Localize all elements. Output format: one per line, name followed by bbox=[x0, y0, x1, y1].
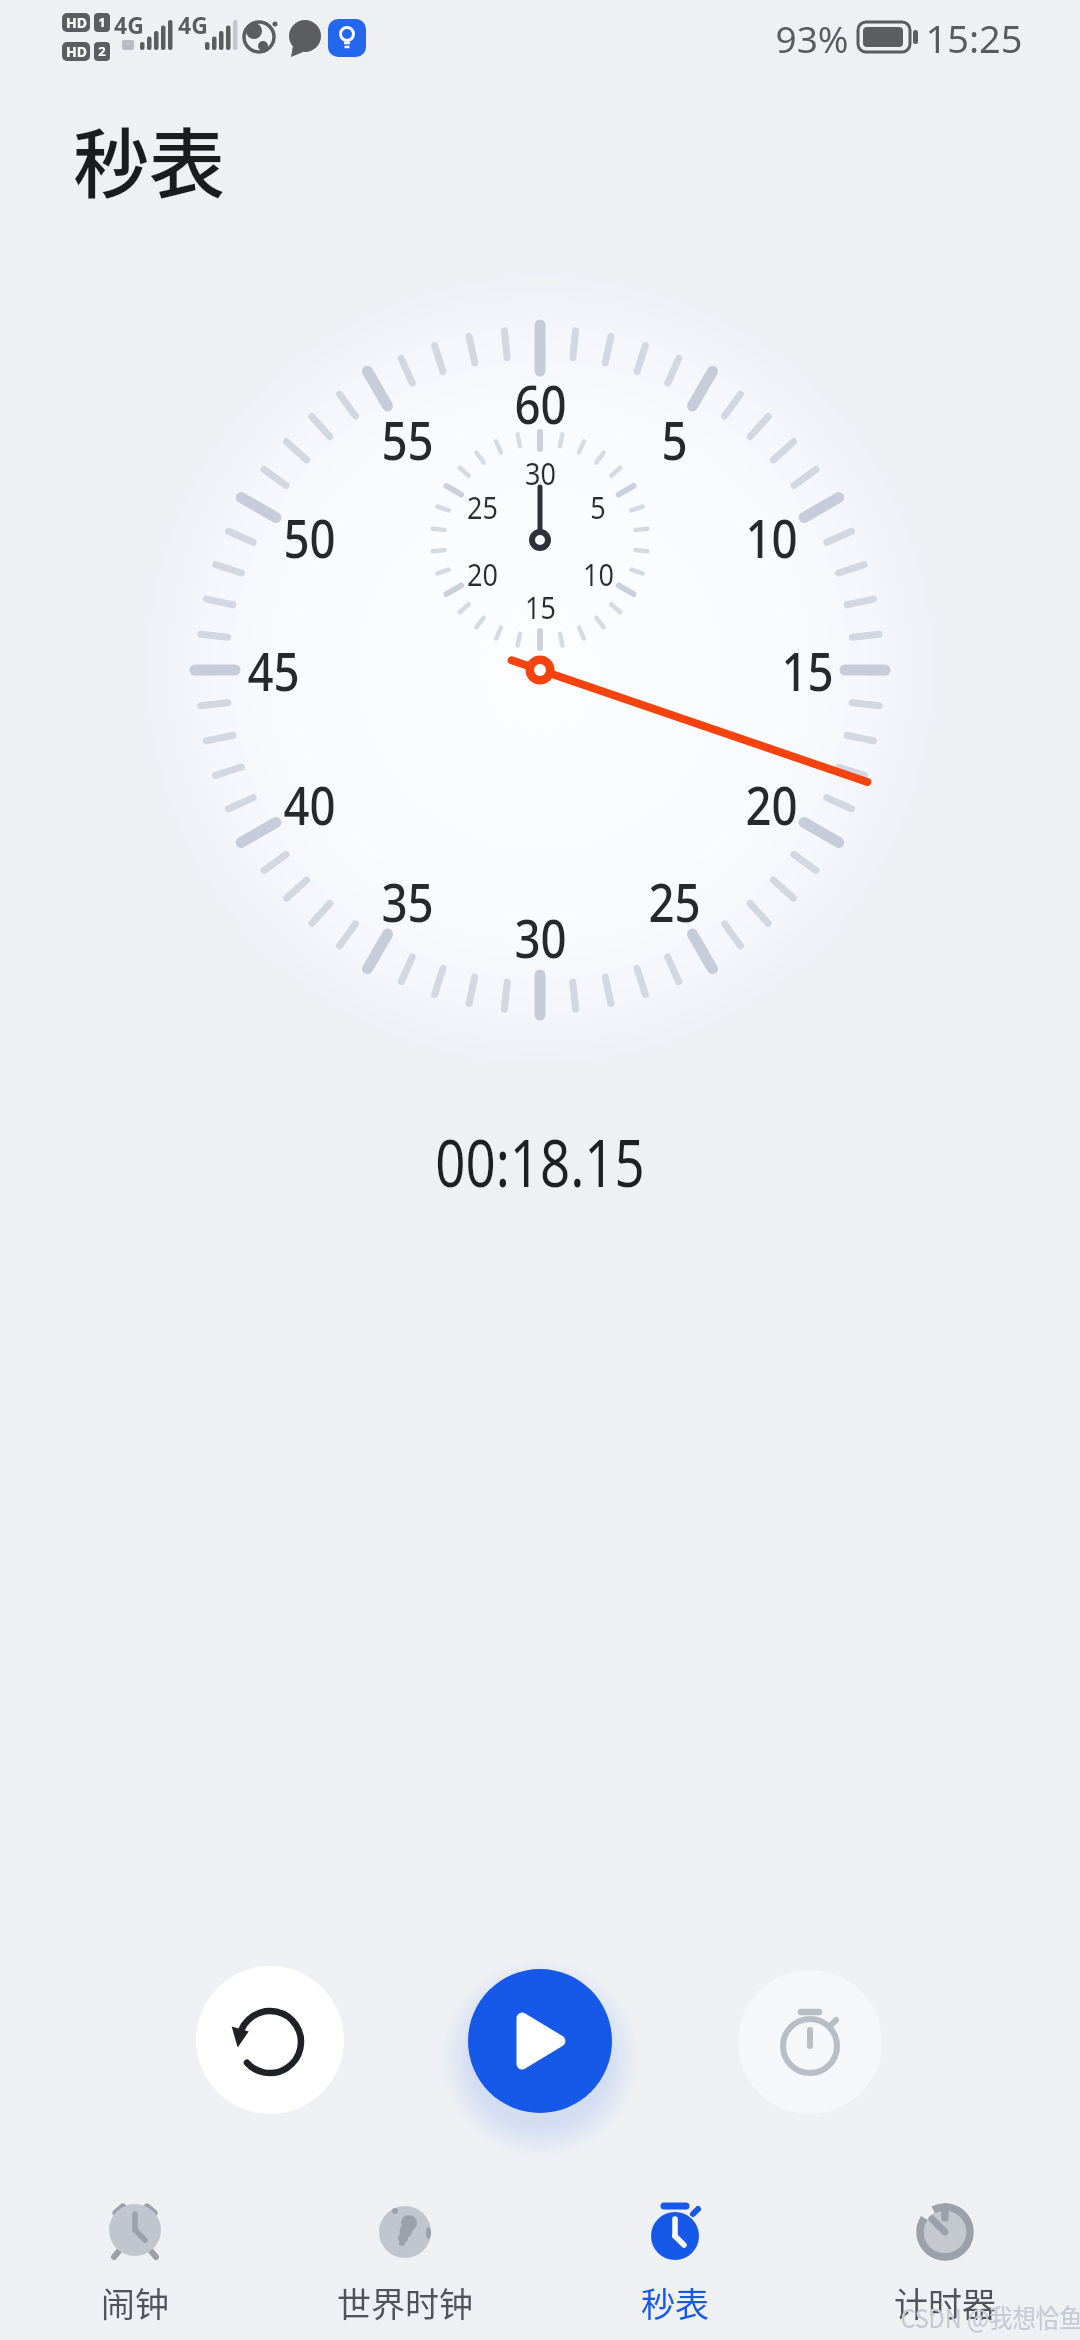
staticText: 2 bbox=[98, 42, 106, 60]
staticText: 15:25 bbox=[925, 12, 1023, 64]
staticText: 50 bbox=[283, 501, 336, 573]
staticText: 5 bbox=[661, 403, 688, 475]
staticText: HD bbox=[66, 42, 87, 61]
staticText: 25 bbox=[648, 865, 701, 937]
staticText: 秒表 bbox=[641, 2278, 709, 2327]
staticText: 55 bbox=[381, 403, 434, 475]
staticText: 10 bbox=[583, 554, 614, 595]
staticText: 25 bbox=[467, 487, 498, 528]
button[interactable]: 闹钟 bbox=[0, 2192, 270, 2327]
button[interactable]: 计时器 bbox=[810, 2192, 1080, 2327]
staticText: 40 bbox=[283, 768, 336, 840]
button[interactable]: 世界时钟 bbox=[270, 2192, 540, 2327]
staticText: 15 bbox=[781, 634, 834, 706]
button[interactable] bbox=[196, 1966, 344, 2114]
staticText: 世界时钟 bbox=[337, 2278, 473, 2327]
staticText: HD bbox=[66, 13, 87, 32]
staticText: CSDN @我想恰鱼 bbox=[900, 2298, 1080, 2336]
staticText: 秒表 bbox=[73, 104, 225, 214]
staticText: 45 bbox=[247, 634, 300, 706]
staticText: 闹钟 bbox=[101, 2278, 169, 2327]
staticText: 4G bbox=[178, 9, 208, 40]
staticText: 1 bbox=[98, 13, 106, 31]
staticText: 4G bbox=[114, 9, 144, 40]
staticText: 20 bbox=[745, 768, 798, 840]
staticText: 93% bbox=[775, 13, 849, 63]
staticText: 计时器 bbox=[894, 2278, 996, 2327]
staticText: 00:18.15 bbox=[435, 1116, 645, 1206]
staticText: 10 bbox=[745, 501, 798, 573]
button[interactable] bbox=[738, 1970, 882, 2114]
staticText: 30 bbox=[525, 453, 556, 494]
staticText: 30 bbox=[514, 901, 567, 973]
staticText: 60 bbox=[514, 367, 567, 439]
staticText: 15 bbox=[525, 587, 556, 628]
button[interactable] bbox=[468, 1969, 612, 2113]
button[interactable]: 秒表 bbox=[540, 2192, 810, 2327]
staticText: 20 bbox=[467, 554, 498, 595]
staticText: 35 bbox=[381, 865, 434, 937]
staticText: 5 bbox=[590, 487, 606, 528]
